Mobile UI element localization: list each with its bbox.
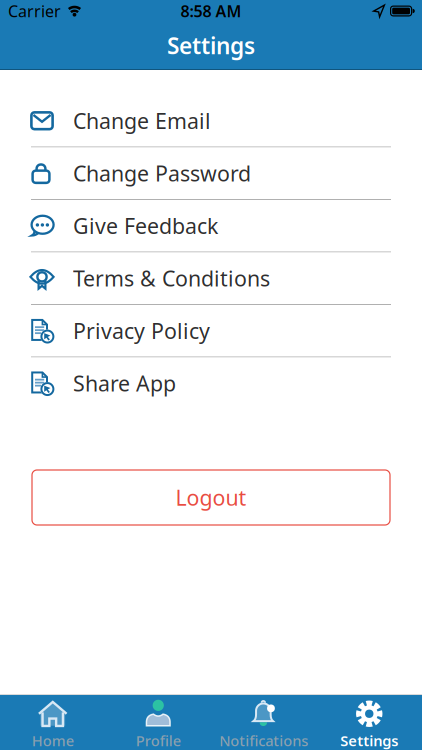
staticText: Change Email — [73, 107, 211, 135]
staticText: Settings — [167, 30, 255, 60]
staticText: 8:58 AM — [180, 0, 241, 22]
staticText: Carrier — [8, 0, 61, 22]
staticText: Logout — [175, 483, 246, 512]
staticText: Settings — [340, 731, 398, 750]
staticText: Home — [32, 731, 74, 750]
button[interactable]: Logout — [32, 470, 390, 525]
button[interactable]: Terms & Conditions — [0, 252, 422, 304]
staticText: Notifications — [219, 731, 308, 750]
staticText: Profile — [136, 731, 181, 750]
button[interactable]: Home — [0, 700, 105, 750]
staticText: Share App — [73, 369, 176, 397]
button[interactable]: Notifications — [211, 700, 316, 750]
button[interactable]: Give Feedback — [0, 200, 422, 251]
staticText: Give Feedback — [73, 212, 218, 240]
button[interactable]: Share App — [0, 357, 422, 409]
button[interactable]: Change Password — [0, 147, 422, 199]
button[interactable]: Change Email — [0, 95, 422, 146]
button[interactable]: Settings — [316, 700, 422, 750]
staticText: Terms & Conditions — [73, 264, 270, 292]
button[interactable]: Privacy Policy — [0, 305, 422, 356]
button[interactable]: Profile — [105, 700, 211, 750]
staticText: Privacy Policy — [73, 317, 210, 345]
staticText: Change Password — [73, 159, 251, 187]
